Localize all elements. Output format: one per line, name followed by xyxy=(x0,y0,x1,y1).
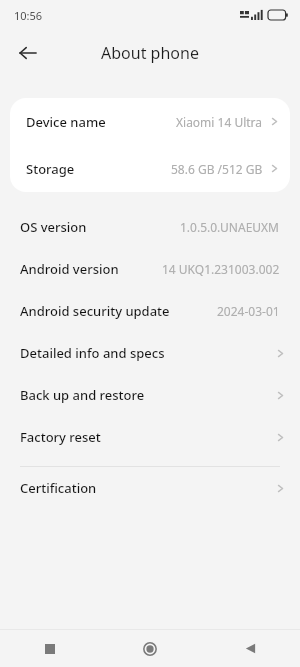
staticText: 10:56 xyxy=(14,8,43,23)
button[interactable]: Android security update xyxy=(0,290,300,332)
staticText: Device name xyxy=(26,113,106,131)
staticText: Certification xyxy=(20,479,97,497)
staticText: Storage xyxy=(26,160,75,178)
button[interactable]: Back xyxy=(200,630,300,667)
staticText: Android version xyxy=(20,260,119,278)
button[interactable]: Back up and restore xyxy=(0,374,300,416)
button[interactable]: Recents xyxy=(0,630,100,667)
staticText: Xiaomi 14 Ultra xyxy=(176,114,263,130)
button[interactable]: Detailed info and specs xyxy=(0,332,300,374)
button[interactable]: Storage xyxy=(10,145,290,192)
button[interactable]: OS version xyxy=(0,206,300,248)
staticText: Back up and restore xyxy=(20,386,145,404)
button[interactable]: Certification xyxy=(0,467,300,509)
staticText: 58.6 GB /512 GB xyxy=(171,161,263,177)
staticText: 2024-03-01 xyxy=(217,303,280,319)
staticText: About phone xyxy=(101,42,199,64)
staticText: 14 UKQ1.231003.002 xyxy=(162,261,280,277)
staticText: Factory reset xyxy=(20,428,101,446)
staticText: Android security update xyxy=(20,302,170,320)
button[interactable]: Factory reset xyxy=(0,416,300,458)
staticText: 1.0.5.0.UNAEUXM xyxy=(180,219,280,235)
button[interactable]: Back xyxy=(12,37,44,69)
staticText: Detailed info and specs xyxy=(20,344,165,362)
button[interactable]: Device name xyxy=(10,98,290,145)
button[interactable]: Android version xyxy=(0,248,300,290)
button[interactable]: Home xyxy=(100,630,200,667)
staticText: OS version xyxy=(20,218,87,236)
